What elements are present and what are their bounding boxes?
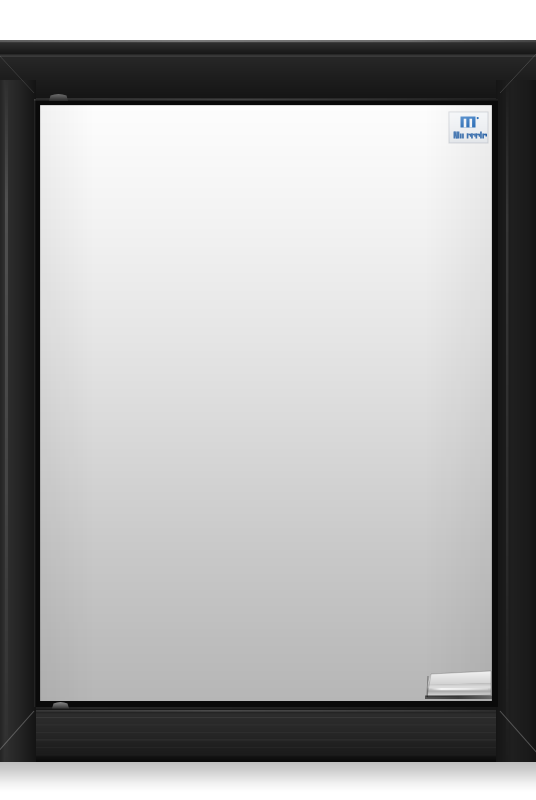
- button[interactable]: Nilkamal mirror cabinet product photo: [0, 0, 536, 800]
